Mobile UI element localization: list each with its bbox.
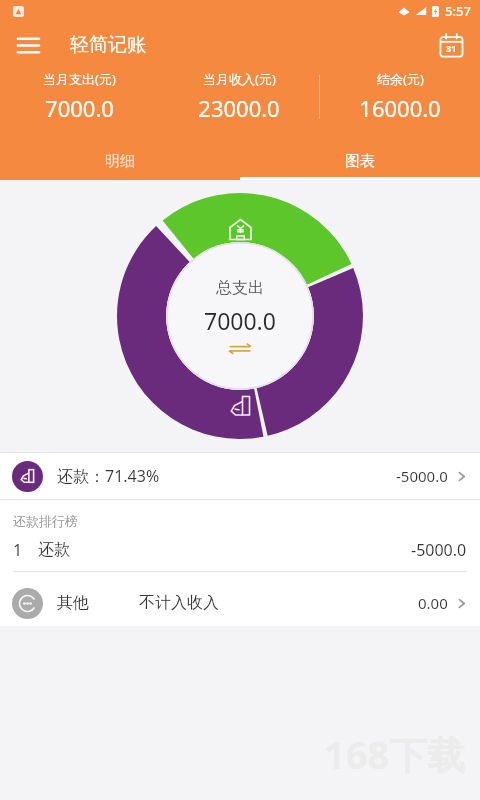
staticText: 23000.0: [198, 93, 280, 123]
staticText: -5000.0: [396, 466, 448, 486]
staticText: 图表: [345, 152, 375, 171]
staticText: 1: [13, 539, 23, 561]
staticText: 总支出: [216, 278, 264, 298]
staticText: 16000.0: [359, 93, 441, 123]
button[interactable]: Swap currency: [227, 343, 253, 354]
staticText: 还款排行榜: [13, 513, 78, 529]
staticText: 168下载: [324, 728, 466, 780]
staticText: 还款: [38, 540, 70, 560]
button[interactable]: Calendar: [430, 24, 472, 66]
button[interactable]: 其他: [0, 580, 480, 626]
staticText: 轻简记账: [70, 33, 146, 57]
staticText: -5000.0: [411, 539, 467, 561]
button[interactable]: Menu: [6, 23, 50, 67]
staticText: 7000.0: [45, 93, 114, 123]
button[interactable]: 1: [0, 529, 480, 571]
staticText: 7000.0: [204, 305, 276, 336]
staticText: 31: [446, 42, 457, 54]
staticText: 当月支出(元): [43, 70, 116, 88]
staticText: 不计入收入: [139, 593, 219, 613]
button[interactable]: 明细: [0, 142, 240, 180]
staticText: 其他: [57, 593, 89, 613]
staticText: 5:57: [445, 2, 471, 20]
staticText: 结余(元): [377, 70, 424, 88]
staticText: 明细: [105, 152, 135, 171]
button[interactable]: 图表: [240, 142, 480, 180]
button[interactable]: 还款：71.43%: [0, 453, 480, 499]
staticText: 当月收入(元): [203, 70, 276, 88]
staticText: 0.00: [418, 593, 448, 613]
staticText: 还款：71.43%: [57, 465, 160, 487]
